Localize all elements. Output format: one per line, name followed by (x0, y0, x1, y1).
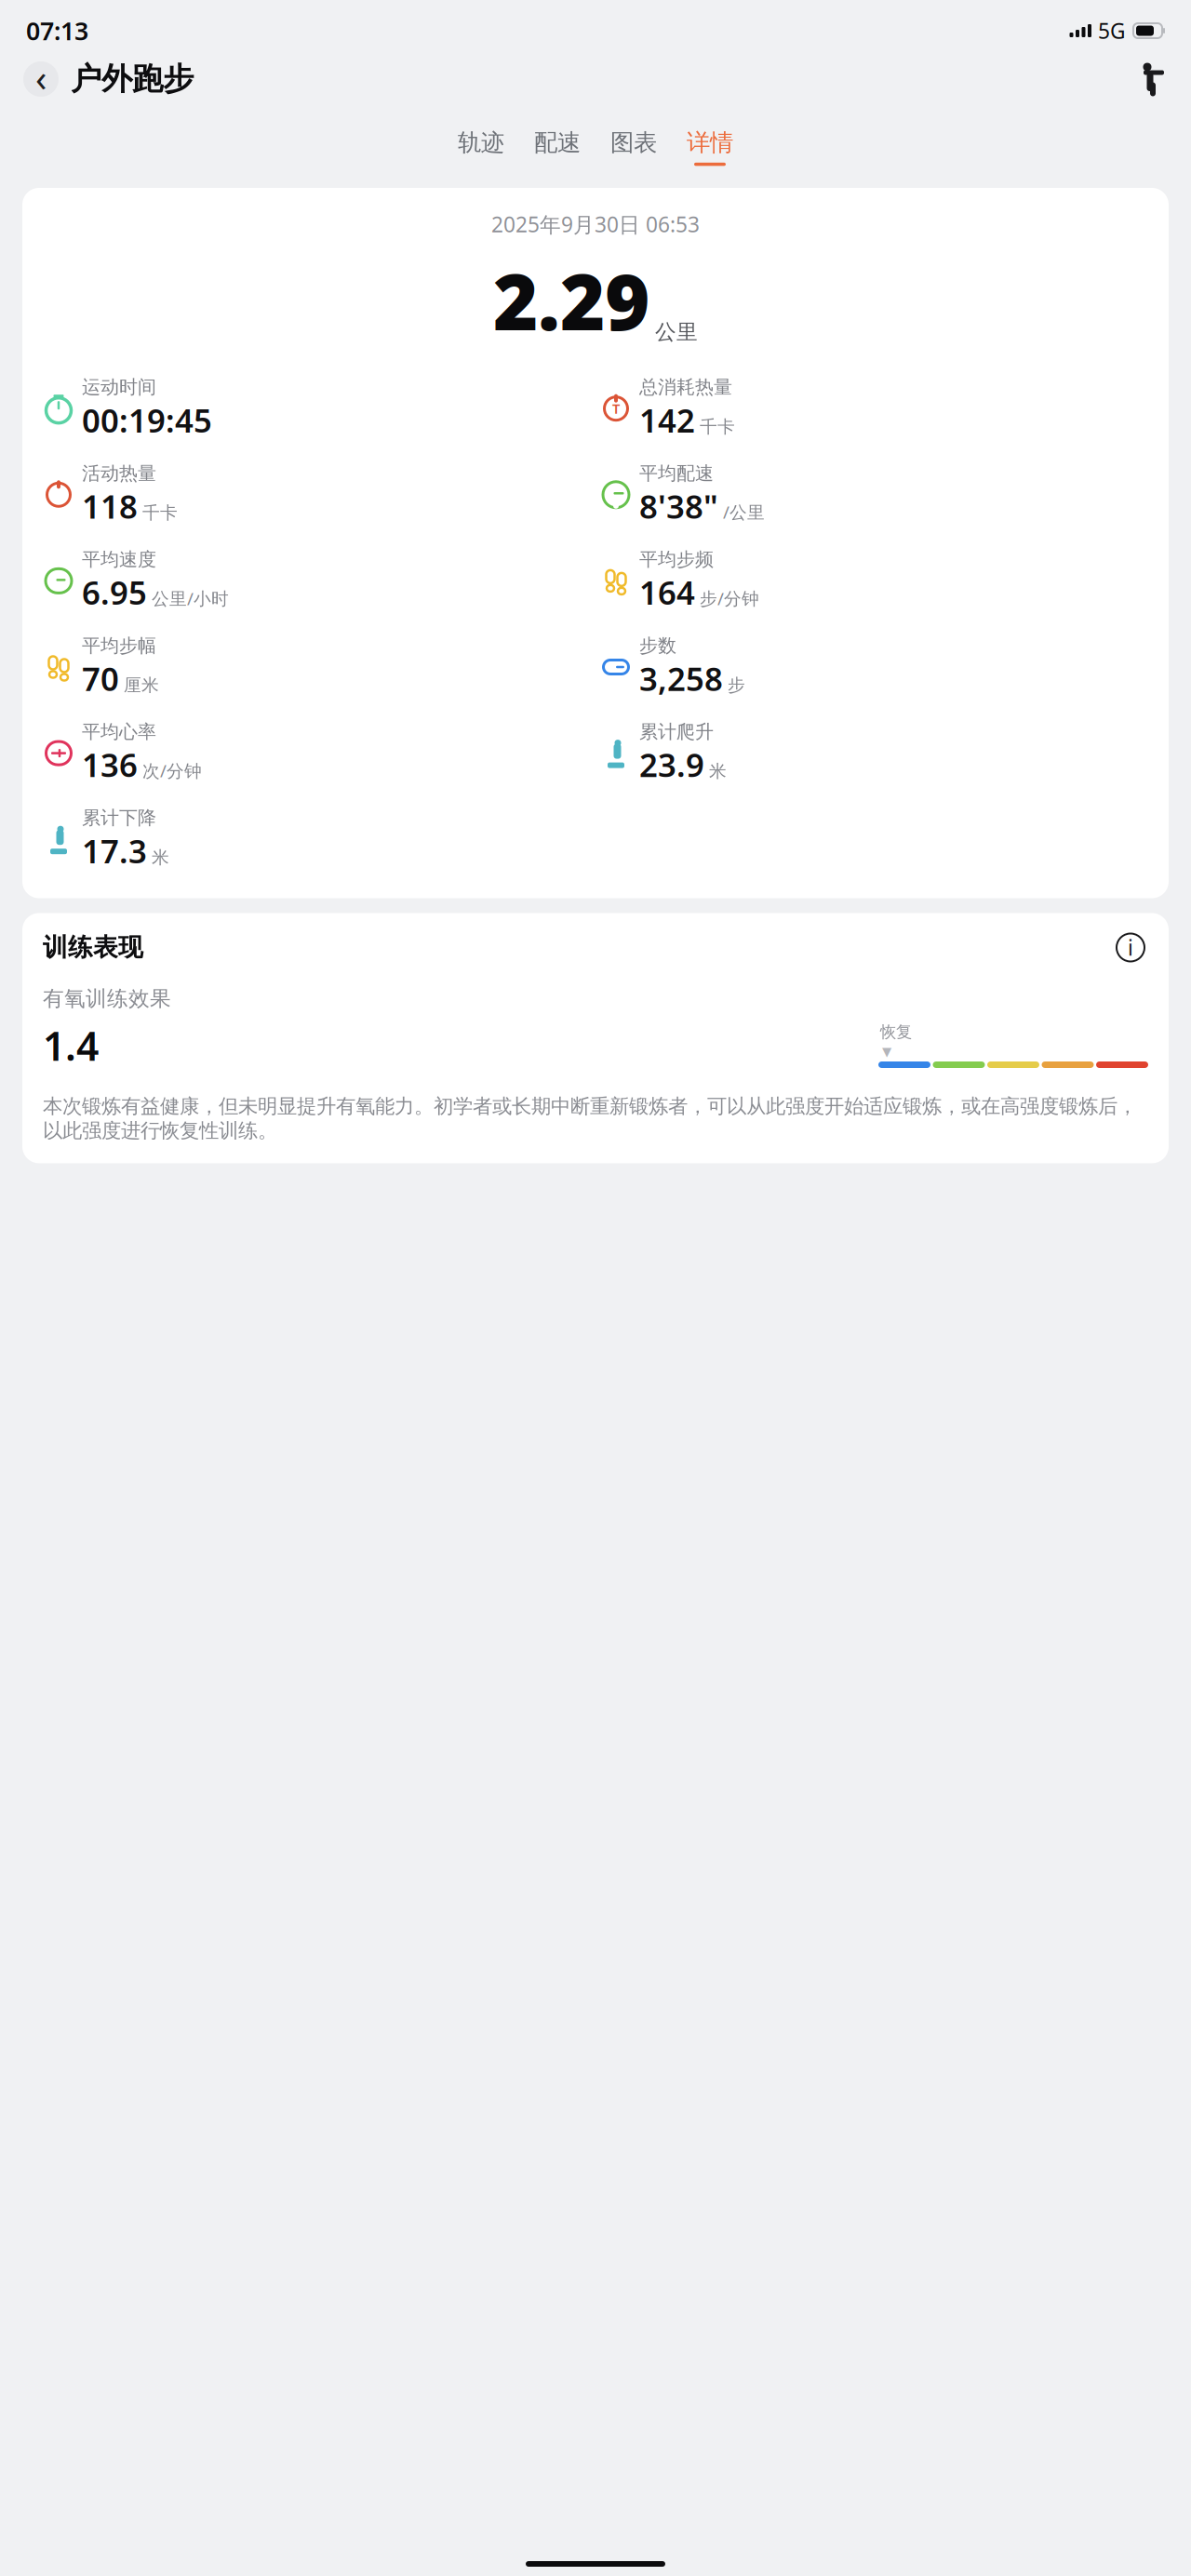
staticText: 平均步幅 (82, 634, 156, 657)
staticText: 3,258 (639, 657, 723, 700)
staticText: 详情 (687, 128, 733, 157)
staticText: 恢复 (880, 1022, 912, 1042)
staticText: 平均心率 (82, 720, 156, 743)
staticText: 118 (82, 485, 138, 527)
staticText: 公里/小时 (152, 587, 229, 610)
staticText: 平均速度 (82, 548, 156, 571)
staticText: 23.9 (639, 743, 704, 786)
staticText: 公里 (655, 319, 698, 345)
button[interactable]: 返回 (20, 59, 61, 100)
staticText: 次/分钟 (142, 759, 202, 782)
button[interactable]: 配速 (519, 123, 595, 171)
staticText: 平均步频 (639, 548, 714, 571)
staticText: ▼ (882, 1045, 891, 1059)
staticText: 累计爬升 (639, 720, 714, 743)
staticText: 步/分钟 (700, 587, 759, 610)
staticText: 米 (152, 847, 169, 868)
staticText: 总消耗热量 (639, 376, 732, 399)
button[interactable]: 详情 (672, 123, 748, 171)
staticText: 17.3 (82, 829, 147, 872)
staticText: 米 (709, 761, 727, 782)
staticText: 厘米 (124, 674, 159, 696)
staticText: 步数 (639, 634, 676, 657)
staticText: 配速 (534, 128, 581, 157)
staticText: 千卡 (700, 416, 735, 437)
staticText: 6.95 (82, 571, 147, 614)
staticText: 千卡 (142, 502, 178, 523)
staticText: 本次锻炼有益健康，但未明显提升有氧能力。初学者或长期中断重新锻炼者，可以从此强度… (43, 1094, 1137, 1143)
button[interactable]: 说明 (1113, 930, 1148, 965)
staticText: i (1128, 933, 1133, 961)
staticText: 累计下降 (82, 806, 156, 829)
staticText: 训练表现 (43, 932, 143, 963)
staticText: T (612, 399, 620, 418)
staticText: 有氧训练效果 (43, 986, 171, 1012)
staticText: 5G (1098, 17, 1126, 45)
staticText: 136 (82, 743, 138, 786)
staticText: 2025年9月30日 06:53 (491, 210, 700, 238)
staticText: 2.29 (493, 249, 649, 352)
staticText: 70 (82, 657, 119, 700)
button[interactable]: 轨迹 (443, 123, 519, 171)
staticText: ‹ (35, 52, 47, 102)
button[interactable]: 运动类型 (1130, 59, 1171, 100)
staticText: 图表 (610, 128, 657, 157)
staticText: 00:19:45 (82, 399, 212, 441)
staticText: 户外跑步 (71, 60, 194, 98)
staticText: 轨迹 (458, 128, 504, 157)
staticText: 07:13 (26, 14, 88, 47)
staticText: 8'38" (639, 485, 718, 527)
staticText: 步 (728, 674, 745, 696)
staticText: 142 (639, 399, 695, 441)
staticText: 平均配速 (639, 462, 714, 485)
staticText: 1.4 (43, 1019, 99, 1072)
staticText: 活动热量 (82, 462, 156, 485)
staticText: 164 (639, 571, 695, 614)
staticText: 运动时间 (82, 376, 156, 399)
button[interactable]: 图表 (595, 123, 672, 171)
staticText: /公里 (723, 500, 765, 523)
